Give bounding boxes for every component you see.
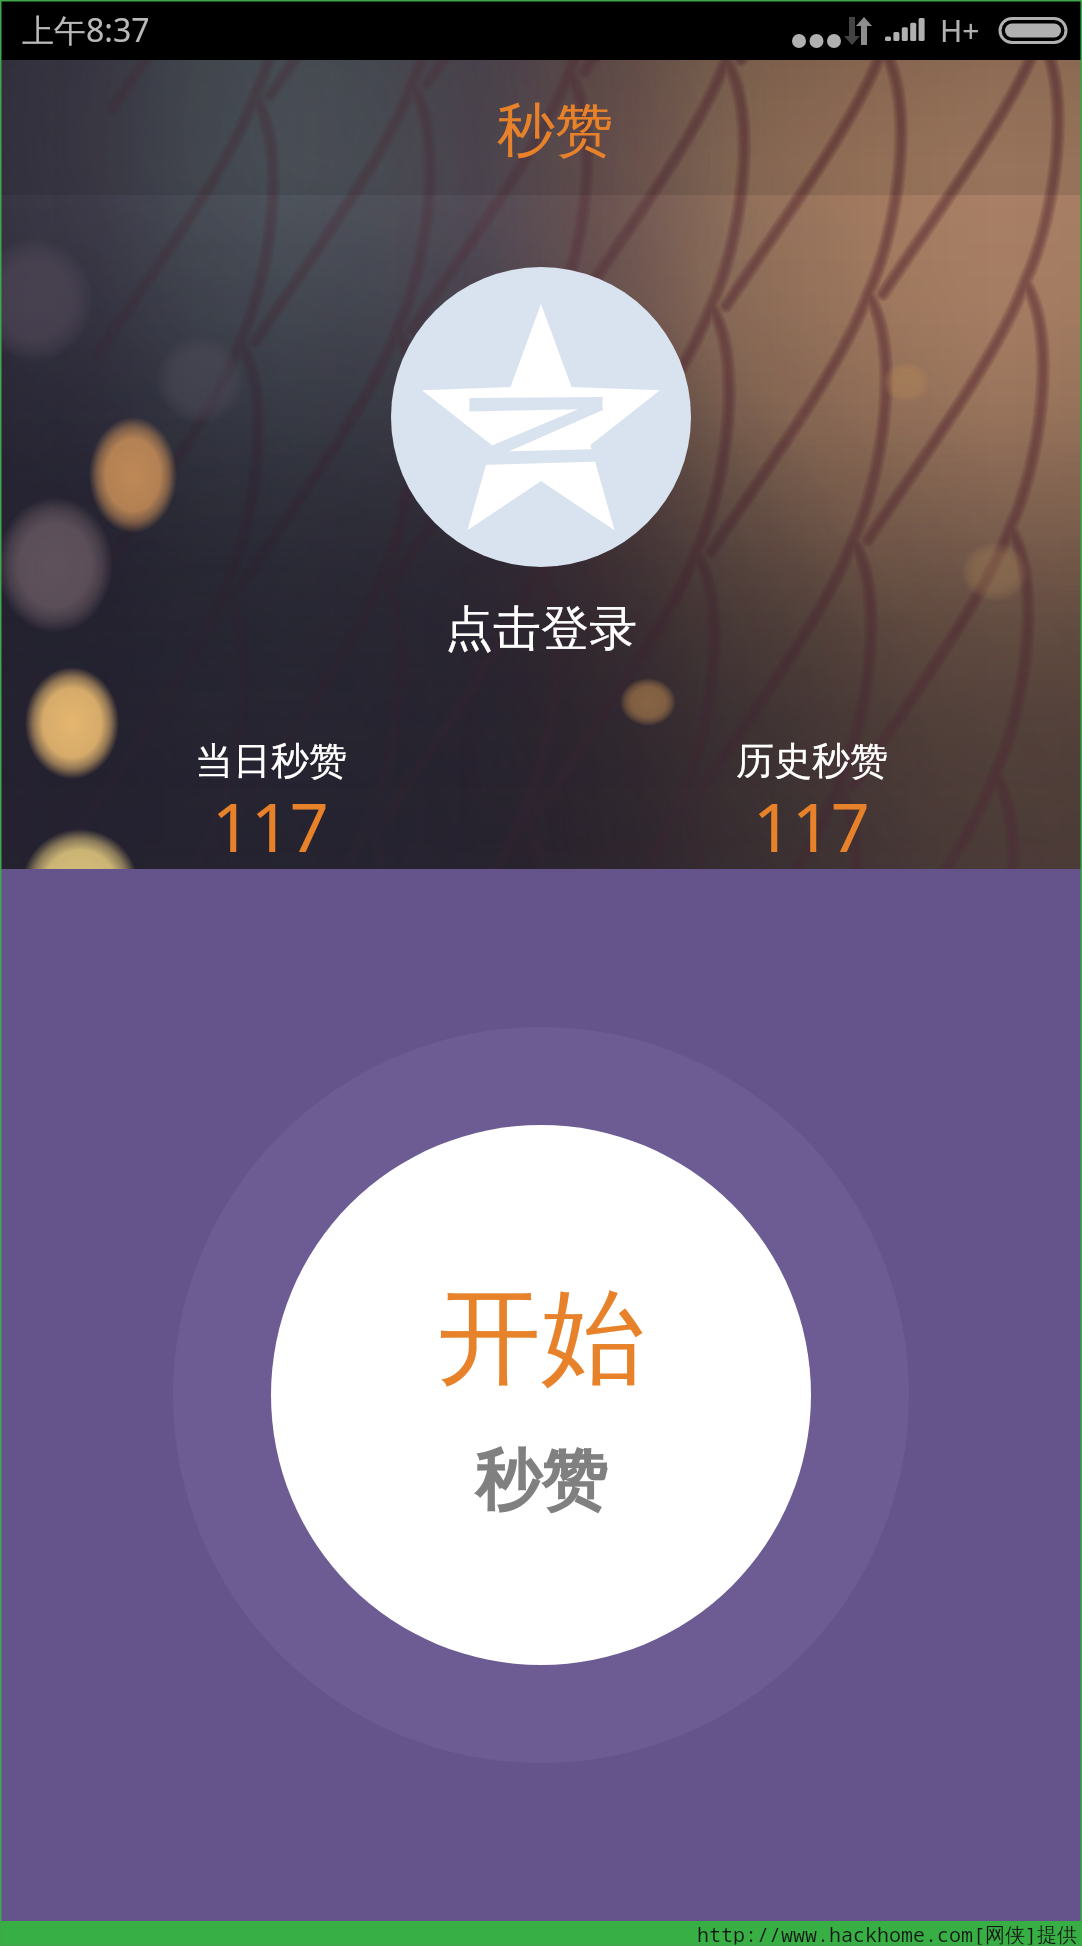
button[interactable]: 开始 [271, 1125, 811, 1665]
button[interactable]: 当日秒赞 [0, 737, 541, 869]
staticText: 当日秒赞 [195, 737, 347, 785]
staticText: 秒赞 [497, 94, 613, 167]
button[interactable]: 秒赞 [0, 60, 1082, 195]
staticText: 开始 [437, 1273, 645, 1404]
staticText: 历史秒赞 [736, 737, 888, 785]
staticText: 117 [212, 779, 329, 869]
staticText: 117 [753, 779, 870, 869]
staticText: 秒赞 [475, 1439, 607, 1522]
button[interactable]: 点击登录 [445, 599, 637, 659]
staticText: H+ [940, 10, 980, 51]
button[interactable]: 历史秒赞 [541, 737, 1082, 869]
staticText: 上午8:37 [22, 8, 150, 52]
button[interactable]: Login with QZone account [391, 267, 691, 567]
staticText: http://www.hackhome.com[网侠]提供 [697, 1921, 1077, 1946]
